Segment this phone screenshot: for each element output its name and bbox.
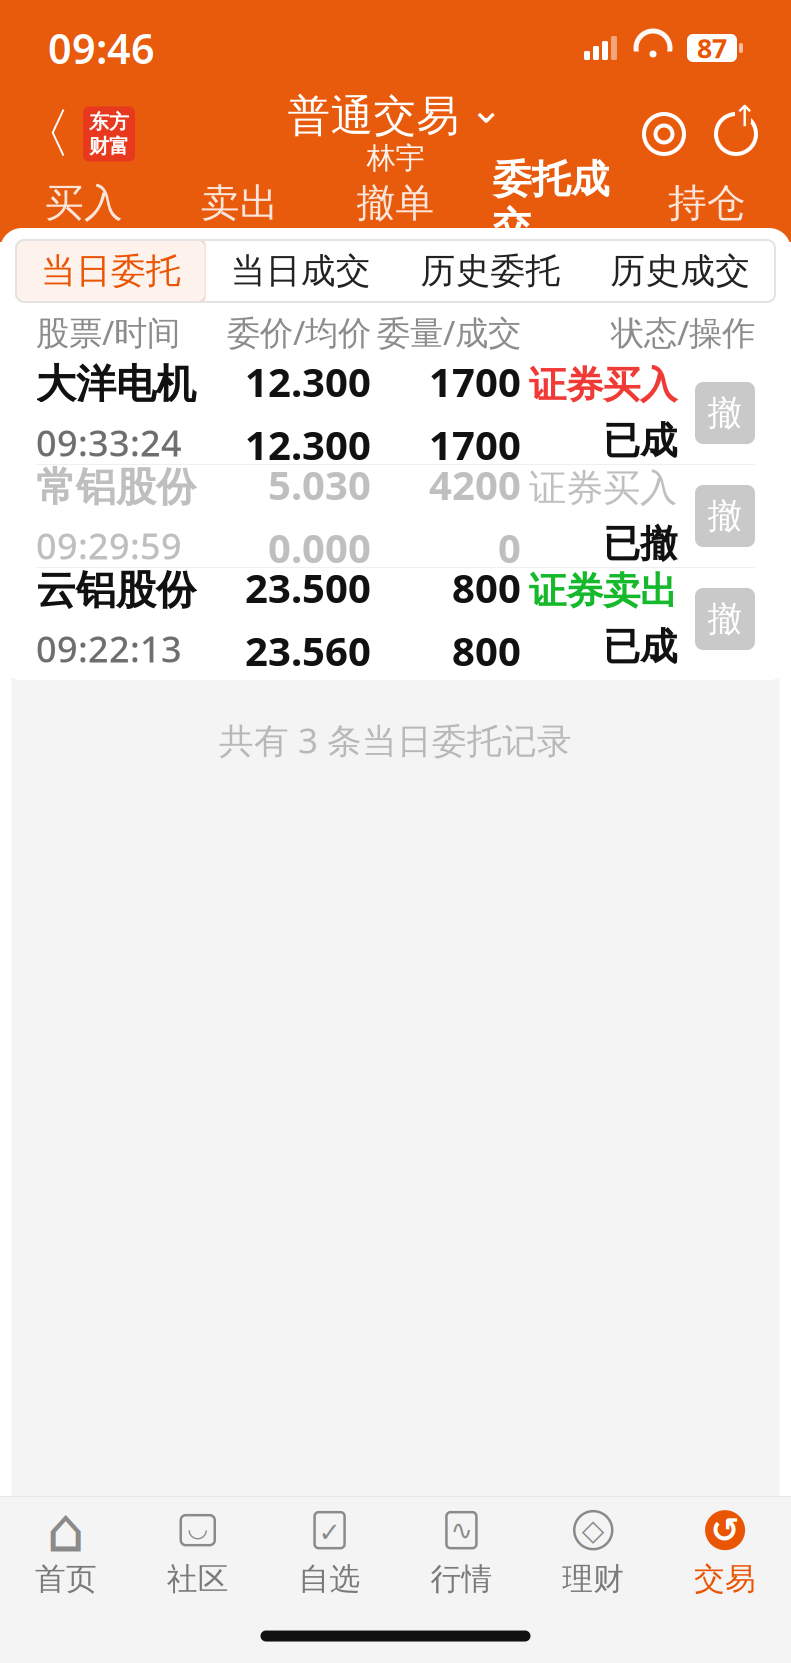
staticText: 当日成交 [231, 250, 371, 292]
staticText: 买入 [45, 179, 123, 227]
button[interactable]: 大洋电机 [0, 362, 791, 464]
staticText: 首页 [35, 1560, 97, 1598]
button[interactable]: 撤 [695, 382, 755, 444]
button[interactable]: 买入 [6, 172, 162, 234]
staticText: 行情 [430, 1560, 492, 1598]
staticText: 当日委托 [41, 250, 181, 292]
staticText: 已撤 [603, 521, 677, 567]
staticText: 东方 [89, 109, 129, 134]
staticText: 800 [452, 624, 521, 677]
button[interactable]: ✓ [264, 1497, 395, 1609]
button[interactable]: 历史委托 [395, 240, 585, 302]
staticText: 撤 [707, 495, 742, 537]
staticText: 撤 [707, 598, 742, 640]
staticText: 交易 [694, 1560, 756, 1598]
button[interactable]: 撤 [695, 485, 755, 547]
staticText: 股票/时间 [36, 310, 180, 354]
staticText: 09:22:13 [36, 625, 182, 672]
button[interactable]: 刷新 [699, 96, 773, 172]
button[interactable]: ◇ [527, 1497, 659, 1609]
staticText: 已成 [603, 624, 677, 670]
staticText: 0.000 [268, 521, 371, 574]
staticText: 09:46 [48, 21, 155, 75]
button[interactable]: 常铝股份 [0, 465, 791, 567]
staticText: 证券卖出 [529, 568, 677, 614]
staticText: ✓ [319, 1517, 341, 1547]
staticText: 常铝股份 [36, 462, 196, 512]
staticText: 已成 [603, 418, 677, 464]
staticText: 委量/成交 [377, 310, 521, 354]
staticText: 大洋电机 [36, 359, 196, 409]
staticText: 历史成交 [610, 250, 750, 292]
staticText: 普通交易 [287, 90, 459, 142]
button[interactable]: ◡ [132, 1497, 264, 1609]
button[interactable]: ↺ [659, 1497, 791, 1609]
staticText: 社区 [167, 1560, 229, 1598]
staticText: 持仓 [668, 179, 746, 227]
button[interactable]: 持仓 [629, 172, 785, 234]
button[interactable]: 返回 [0, 96, 153, 172]
button[interactable]: ∿ [395, 1497, 527, 1609]
staticText: 12.300 [245, 355, 371, 408]
button[interactable]: 委托成交 [473, 172, 629, 234]
staticText: 撤 [707, 392, 742, 434]
staticText: 〈 [18, 101, 71, 167]
staticText: 23.560 [245, 624, 371, 677]
staticText: 09:33:24 [36, 419, 182, 466]
staticText: 撤单 [356, 179, 434, 227]
staticText: 林宇 [366, 140, 424, 176]
staticText: 理财 [562, 1560, 624, 1598]
staticText: 87 [697, 30, 727, 66]
staticText: 证券买入 [529, 362, 677, 408]
button[interactable]: 卖出 [162, 172, 318, 234]
staticText: 自选 [299, 1560, 361, 1598]
staticText: 23.500 [245, 561, 371, 614]
staticText: 09:29:59 [36, 522, 182, 569]
button[interactable]: 云铝股份 [0, 568, 791, 670]
staticText: 历史委托 [420, 250, 560, 292]
staticText: ↑ [732, 99, 757, 133]
staticText: ⌂ [46, 1495, 85, 1565]
staticText: ◡ [187, 1514, 208, 1542]
staticText: 12.300 [245, 418, 371, 471]
staticText: 委价/均价 [227, 310, 371, 354]
staticText: ↺ [711, 1510, 740, 1550]
button[interactable]: 撤 [695, 588, 755, 650]
button[interactable]: ⌂ [0, 1497, 132, 1609]
button[interactable]: 当日委托 [16, 240, 206, 302]
button[interactable]: 当日成交 [206, 240, 396, 302]
staticText: ⌄ [469, 86, 503, 132]
staticText: 云铝股份 [36, 565, 196, 615]
staticText: 委托成交 [493, 155, 610, 250]
button[interactable]: 设置 [629, 96, 699, 172]
staticText: 5.030 [268, 458, 371, 511]
staticText: 证券买入 [529, 465, 677, 511]
staticText: 卖出 [201, 179, 279, 227]
staticText: 状态/操作 [611, 310, 755, 354]
staticText: ◇ [582, 1513, 605, 1547]
staticText: ∿ [450, 1515, 472, 1545]
button[interactable]: 历史成交 [585, 240, 775, 302]
staticText: 4200 [429, 458, 521, 511]
button[interactable]: 撤单 [318, 172, 473, 234]
staticText: 0 [498, 521, 521, 574]
button[interactable]: 普通交易 [287, 90, 503, 142]
staticText: 财富 [89, 134, 129, 159]
staticText: 共有 3 条当日委托记录 [219, 717, 572, 763]
staticText: 1700 [429, 355, 521, 408]
staticText: 1700 [429, 418, 521, 471]
staticText: 800 [452, 561, 521, 614]
